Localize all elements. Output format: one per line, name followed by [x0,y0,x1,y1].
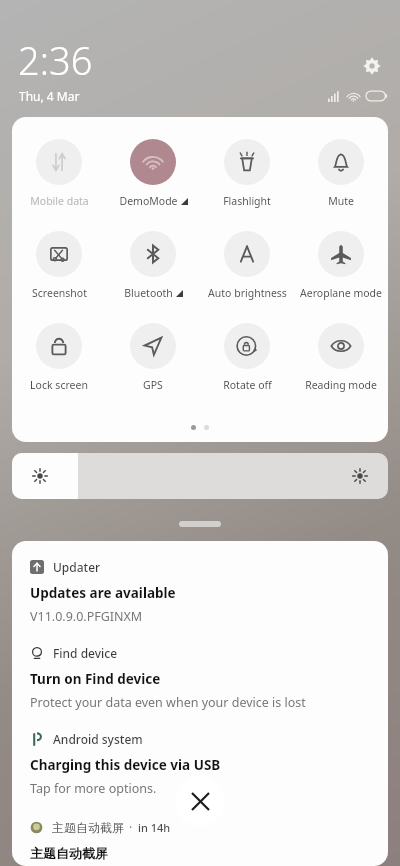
button[interactable]: 主题自动截屏 [30,819,171,835]
button[interactable] [179,521,221,527]
button[interactable]: Android system [30,731,372,797]
button[interactable]: Bluetooth [106,231,200,300]
button[interactable]: Aeroplane mode [294,231,388,300]
staticText: GPS [143,378,163,392]
staticText: Updates are available [30,584,176,602]
staticText: Bluetooth [124,286,173,300]
staticText: Aeroplane mode [300,286,382,300]
button[interactable]: Updater [30,559,372,625]
staticText: Thu, 4 Mar [19,88,80,104]
staticText: Rotate off [223,378,272,392]
staticText: 主题自动截屏 [52,820,124,835]
button[interactable] [12,453,388,499]
staticText: · [129,819,133,835]
staticText: in 14h [138,820,171,835]
staticText: Android system [53,731,143,747]
staticText: 2:36 [18,34,93,86]
staticText: Flashlight [223,194,271,208]
button[interactable]: Mobile data [12,139,106,208]
button[interactable]: Auto brightness [200,231,294,300]
button[interactable]: Lock screen [12,323,106,392]
staticText: Mobile data [30,194,89,208]
button[interactable]: Mute [294,139,388,208]
button[interactable]: Find device [30,645,372,711]
button[interactable]: Reading mode [294,323,388,392]
button[interactable]: DemoMode [106,139,200,208]
button[interactable]: Flashlight [200,139,294,208]
button[interactable]: Rotate off [200,323,294,392]
staticText: Auto brightness [208,286,287,300]
staticText: DemoMode [119,194,178,208]
staticText: Mute [328,194,354,208]
staticText: Turn on Find device [30,670,161,688]
staticText: Charging this device via USB [30,756,221,774]
staticText: Screenshot [32,286,87,300]
staticText: Lock screen [30,378,88,392]
staticText: V11.0.9.0.PFGINXM [30,608,143,625]
staticText: Find device [53,645,118,661]
button[interactable]: Close [175,776,225,826]
staticText: Tap for more options. [30,780,157,797]
button[interactable]: Screenshot [12,231,106,300]
staticText: Updater [53,559,101,575]
staticText: Reading mode [305,378,377,392]
button[interactable]: Settings [358,52,386,80]
button[interactable]: GPS [106,323,200,392]
staticText: 主题自动截屏 [30,845,108,861]
staticText: Protect your data even when your device … [30,694,306,711]
